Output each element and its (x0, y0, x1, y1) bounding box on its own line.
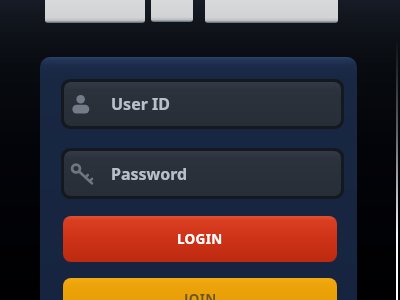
staticText: User ID (111, 93, 170, 115)
button[interactable]: Password (64, 151, 341, 196)
staticText: JOIN (184, 290, 217, 300)
button[interactable]: User ID (64, 82, 341, 126)
button[interactable]: LOGIN (63, 216, 337, 262)
button[interactable]: JOIN (63, 278, 337, 300)
staticText: Password (111, 163, 188, 185)
staticText: LOGIN (177, 230, 223, 248)
